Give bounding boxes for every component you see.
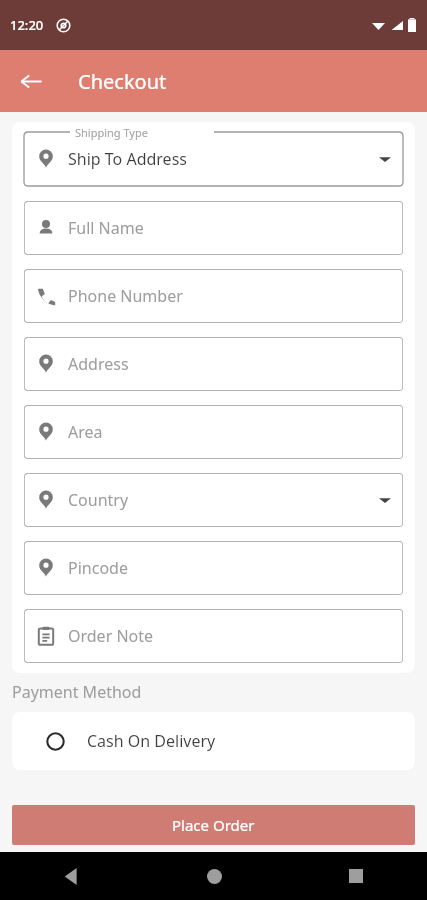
staticText: Checkout [78,68,167,95]
staticText: Order Note [68,625,154,647]
button[interactable]: Place Order [12,805,415,845]
button[interactable]: Address [24,337,403,391]
button[interactable]: Back [8,58,54,104]
staticText: Address [68,353,129,375]
staticText: Shipping Type [75,125,148,140]
button[interactable]: Country [24,473,403,527]
staticText: Ship To Address [68,148,187,170]
button[interactable]: Home [143,852,285,900]
staticText: 12:20 [10,16,44,34]
staticText: Cash On Delivery [87,730,216,752]
staticText: Payment Method [12,681,142,703]
button[interactable]: Order Note [24,609,403,663]
staticText: Full Name [68,217,144,239]
staticText: Phone Number [68,285,183,307]
staticText: Country [68,489,129,511]
staticText: Pincode [68,557,128,579]
staticText: Area [68,421,103,443]
staticText: Place Order [172,815,255,835]
button[interactable]: Recent apps [285,852,427,900]
button[interactable]: Cash On Delivery [12,712,415,770]
button[interactable]: Back [0,852,143,900]
button[interactable]: Full Name [24,201,403,255]
button[interactable]: Phone Number [24,269,403,323]
button[interactable]: Shipping Type [24,132,403,186]
button[interactable]: Area [24,405,403,459]
button[interactable]: Pincode [24,541,403,595]
